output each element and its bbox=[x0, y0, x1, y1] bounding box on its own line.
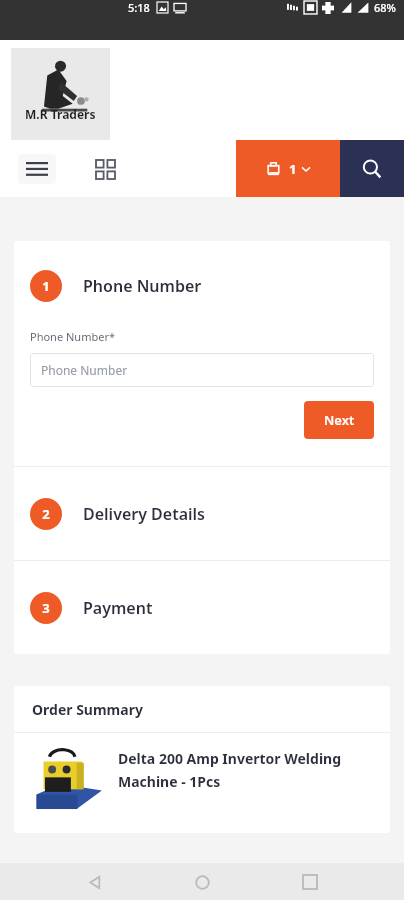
button[interactable]: 1 bbox=[236, 140, 340, 197]
button[interactable]: 2 bbox=[14, 467, 390, 560]
staticText: 2 bbox=[42, 505, 50, 523]
staticText: Phone Number* bbox=[30, 329, 115, 344]
button[interactable]: Search bbox=[340, 140, 404, 197]
staticText: Delta 200 Amp Invertor Welding Machine -… bbox=[118, 749, 342, 791]
button[interactable]: Back bbox=[77, 865, 111, 899]
button[interactable]: 1 bbox=[30, 270, 390, 302]
button[interactable]: 3 bbox=[14, 561, 390, 654]
staticText: Payment bbox=[83, 597, 153, 619]
staticText: 1 bbox=[289, 160, 297, 178]
staticText: M.R Traders bbox=[25, 106, 96, 122]
staticText: Order Summary bbox=[32, 700, 143, 719]
button[interactable]: Home bbox=[185, 865, 219, 899]
button[interactable]: Phone Number bbox=[30, 353, 374, 387]
staticText: 68% bbox=[374, 0, 396, 15]
button[interactable]: Categories bbox=[88, 152, 122, 186]
staticText: 5:18 bbox=[128, 0, 150, 15]
button[interactable]: Next bbox=[304, 401, 374, 439]
staticText: Phone Number bbox=[83, 275, 202, 297]
button[interactable]: Menu bbox=[18, 154, 56, 184]
staticText: Next bbox=[324, 411, 355, 429]
button[interactable]: Delta 200 Amp Invertor Welding Machine -… bbox=[14, 733, 390, 833]
button[interactable]: Recents bbox=[293, 865, 327, 899]
staticText: 3 bbox=[42, 599, 50, 617]
staticText: 1 bbox=[42, 277, 50, 295]
button[interactable]: M.R Traders home bbox=[11, 48, 110, 140]
staticText: Delivery Details bbox=[83, 503, 205, 525]
staticText: Phone Number bbox=[41, 362, 128, 378]
